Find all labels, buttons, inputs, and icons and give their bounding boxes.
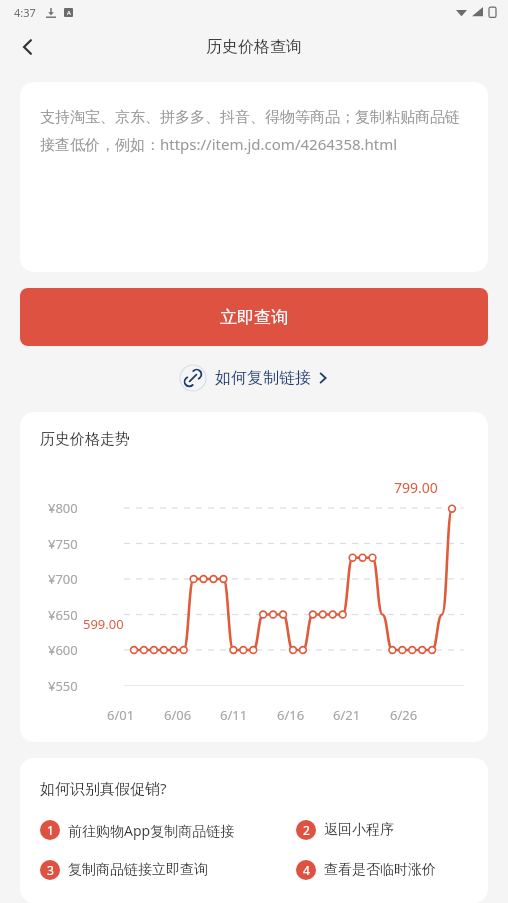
staticText: 6/16 [277, 706, 305, 724]
staticText: 3 [47, 862, 54, 878]
staticText: ¥600 [48, 641, 78, 659]
button[interactable]: 2 [296, 820, 472, 840]
button[interactable]: 4 [296, 860, 472, 880]
staticText: 历史价格走势 [40, 430, 130, 449]
staticText: 如何识别真假促销? [40, 778, 167, 798]
staticText: ¥750 [48, 535, 78, 553]
staticText: 4:37 [14, 5, 36, 20]
staticText: ¥550 [48, 677, 78, 695]
staticText: A [67, 9, 71, 17]
button[interactable]: 如何复制链接 [179, 364, 329, 392]
staticText: 599.00 [83, 615, 124, 633]
staticText: 4 [303, 862, 310, 878]
staticText: 1 [47, 822, 54, 838]
staticText: 6/06 [164, 706, 192, 724]
staticText: 历史价格查询 [206, 37, 302, 57]
staticText: ¥650 [48, 606, 78, 624]
staticText: ¥800 [48, 499, 78, 517]
staticText: 2 [303, 822, 310, 838]
staticText: 6/21 [333, 706, 361, 724]
staticText: 支持淘宝、京东、拼多多、抖音、得物等商品；复制粘贴商品链接查低价，例如：http… [40, 108, 468, 155]
button[interactable]: 立即查询 [20, 288, 488, 346]
staticText: 返回小程序 [324, 821, 394, 839]
staticText: 6/01 [107, 706, 135, 724]
staticText: 复制商品链接立即查询 [68, 861, 208, 879]
button[interactable]: 3 [40, 860, 296, 880]
button[interactable]: Back [8, 27, 48, 67]
button[interactable]: 1 [40, 820, 296, 840]
staticText: 799.00 [394, 478, 438, 497]
staticText: 6/11 [220, 706, 248, 724]
staticText: 6/26 [390, 706, 418, 724]
staticText: 前往购物App复制商品链接 [68, 821, 235, 840]
staticText: 查看是否临时涨价 [324, 861, 436, 879]
staticText: 立即查询 [220, 307, 288, 328]
staticText: 如何复制链接 [215, 368, 311, 388]
staticText: ¥700 [48, 570, 78, 588]
